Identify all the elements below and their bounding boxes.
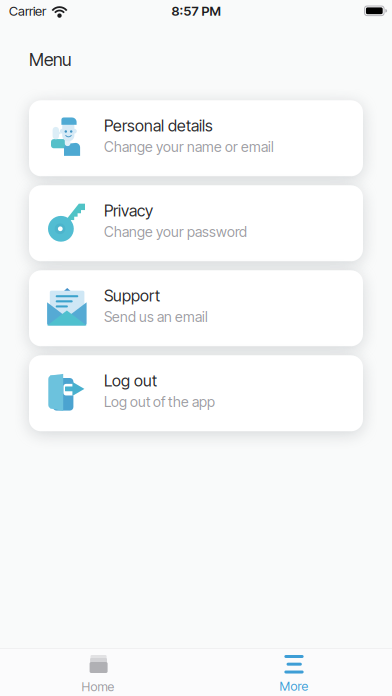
staticText: Log out of the app: [104, 393, 215, 410]
staticText: Carrier: [9, 3, 46, 19]
staticText: Home: [81, 679, 114, 694]
staticText: Menu: [29, 49, 71, 70]
staticText: Change your password: [104, 223, 247, 240]
staticText: Personal details: [104, 116, 213, 135]
staticText: Log out: [104, 371, 157, 390]
staticText: Support: [104, 286, 160, 305]
staticText: Change your name or email: [104, 138, 274, 155]
button[interactable]: Home: [0, 649, 196, 696]
staticText: More: [279, 678, 308, 694]
staticText: Privacy: [104, 201, 153, 220]
staticText: Send us an email: [104, 308, 208, 325]
button[interactable]: Personal details: [29, 100, 363, 176]
staticText: 8:57 PM: [171, 3, 220, 19]
button[interactable]: Support: [29, 270, 363, 346]
button[interactable]: Privacy: [29, 185, 363, 261]
button[interactable]: More: [196, 649, 392, 696]
button[interactable]: Log out: [29, 355, 363, 431]
